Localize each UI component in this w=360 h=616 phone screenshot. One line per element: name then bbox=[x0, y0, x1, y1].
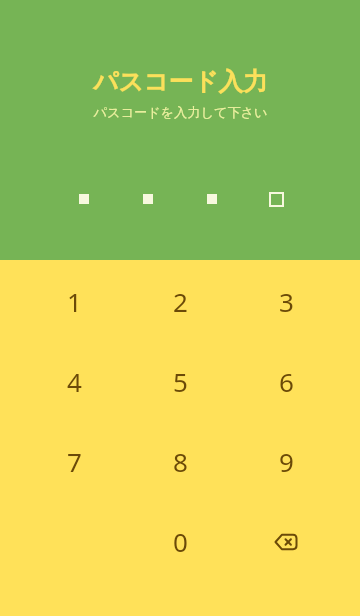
button[interactable]: 2 bbox=[127, 261, 233, 341]
button[interactable]: 0 bbox=[127, 501, 233, 581]
staticText: 8 bbox=[173, 444, 188, 479]
button[interactable]: Delete bbox=[233, 501, 339, 581]
staticText: 4 bbox=[67, 364, 82, 399]
staticText: 9 bbox=[279, 444, 294, 479]
button[interactable]: 5 bbox=[127, 341, 233, 421]
staticText: 0 bbox=[173, 524, 188, 559]
staticText: 1 bbox=[67, 284, 82, 319]
button[interactable]: 7 bbox=[21, 421, 127, 501]
staticText: 5 bbox=[173, 364, 188, 399]
staticText: 3 bbox=[279, 284, 294, 319]
staticText: パスコード入力 bbox=[93, 66, 268, 97]
staticText: 6 bbox=[279, 364, 294, 399]
button[interactable]: 8 bbox=[127, 421, 233, 501]
button[interactable]: 9 bbox=[233, 421, 339, 501]
button[interactable]: 4 bbox=[21, 341, 127, 421]
button[interactable]: 3 bbox=[233, 261, 339, 341]
staticText: 2 bbox=[173, 284, 188, 319]
staticText: パスコードを入力して下さい bbox=[93, 104, 268, 121]
button[interactable]: 6 bbox=[233, 341, 339, 421]
button[interactable]: 1 bbox=[21, 261, 127, 341]
staticText: 7 bbox=[67, 444, 82, 479]
